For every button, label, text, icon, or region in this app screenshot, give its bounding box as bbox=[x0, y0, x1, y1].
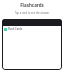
staticText: Flash Cards bbox=[8, 27, 23, 31]
staticText: Tap a card to see the answer bbox=[0, 11, 64, 15]
button[interactable]: Flash Cards bbox=[2, 19, 62, 70]
staticText: Flashcards bbox=[0, 2, 64, 8]
